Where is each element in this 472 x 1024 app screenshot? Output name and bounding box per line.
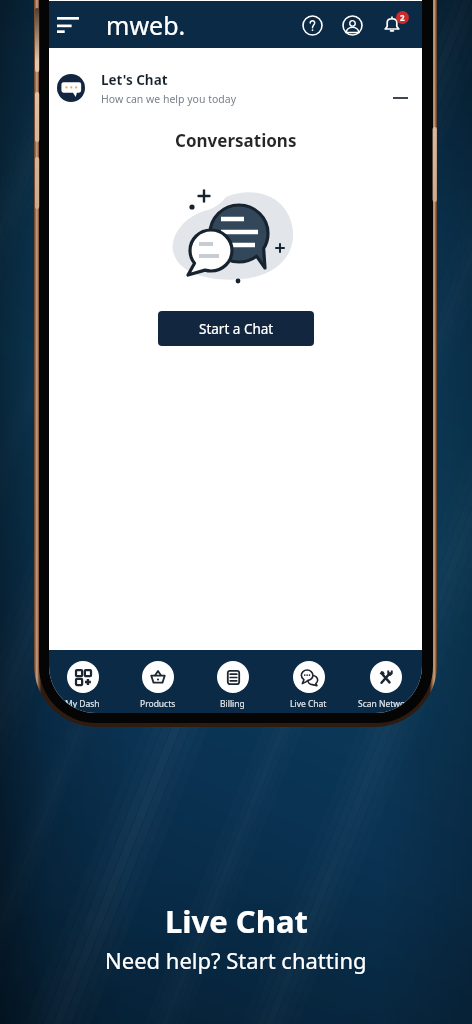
staticText: Live Chat (290, 698, 327, 710)
staticText: How can we help you today (101, 92, 237, 106)
staticText: Billing (220, 698, 245, 710)
button[interactable]: Minimize (387, 85, 413, 111)
staticText: My Dash (65, 698, 100, 710)
staticText: Need help? Start chatting (105, 945, 367, 975)
staticText: Scan Network (358, 698, 414, 710)
button[interactable]: Products (120, 650, 195, 713)
button[interactable]: Live Chat (271, 650, 346, 713)
button[interactable]: Menu (57, 12, 83, 38)
staticText: Let's Chat (101, 71, 168, 89)
staticText: Start a Chat (199, 320, 274, 338)
button[interactable]: Notifications (379, 12, 405, 38)
button[interactable]: My Dash (49, 650, 120, 713)
staticText: mweb. (106, 8, 186, 42)
button[interactable]: Help (299, 12, 325, 38)
staticText: Conversations (175, 129, 297, 152)
button[interactable]: Start a Chat (158, 311, 314, 346)
button[interactable]: Billing (195, 650, 270, 713)
staticText: Products (140, 698, 176, 710)
staticText: Live Chat (165, 900, 308, 942)
staticText: 2 (400, 12, 405, 23)
button[interactable]: Account (339, 12, 365, 38)
button[interactable]: Scan Network (348, 650, 422, 713)
